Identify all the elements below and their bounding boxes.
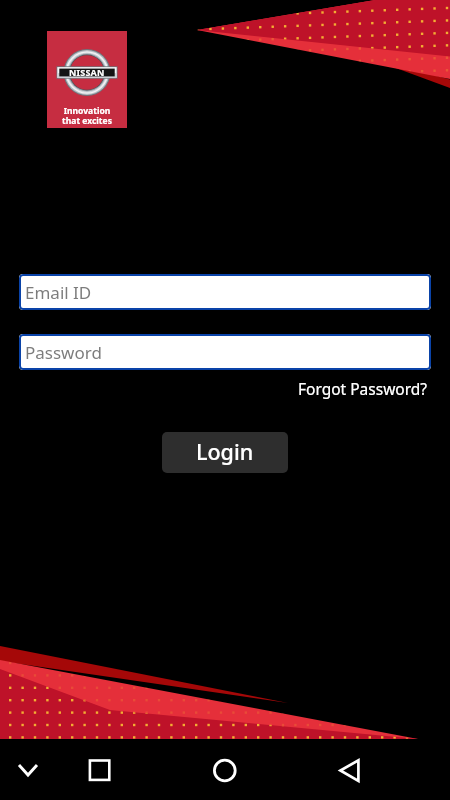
staticText: NISSAN [69, 66, 105, 78]
staticText: Email ID [25, 281, 92, 304]
button[interactable]: Password [19, 334, 431, 370]
button[interactable]: Home [212, 758, 238, 784]
button[interactable]: Forgot Password? [295, 377, 431, 400]
button[interactable]: Login [162, 432, 288, 473]
button[interactable]: Back [337, 758, 363, 784]
staticText: Forgot Password? [298, 378, 428, 399]
button[interactable]: Email ID [19, 274, 431, 310]
staticText: Innovation that excites [62, 105, 112, 126]
staticText: Login [196, 437, 254, 466]
button[interactable]: Hide keyboard [15, 758, 41, 784]
staticText: Password [25, 341, 102, 364]
button[interactable]: Recents [87, 758, 113, 784]
